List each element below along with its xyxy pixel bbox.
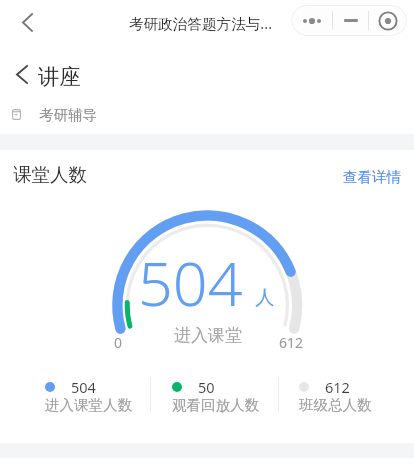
staticText: 观看回放人数 <box>172 396 259 414</box>
button[interactable]: More options <box>291 5 332 36</box>
button[interactable]: Back <box>10 5 44 39</box>
staticText: 查看详情 <box>343 168 401 186</box>
staticText: 0 <box>114 333 123 352</box>
staticText: 612 <box>279 333 304 352</box>
staticText: 504 <box>71 377 96 397</box>
button[interactable]: 查看详情 <box>335 160 409 194</box>
staticText: 讲座 <box>38 63 81 90</box>
staticText: 考研政治答题方法与... <box>129 13 273 33</box>
staticText: 612 <box>325 377 350 397</box>
staticText: 人 <box>255 285 275 310</box>
staticText: 进入课堂 <box>174 325 242 346</box>
staticText: 考研辅导 <box>39 106 97 124</box>
staticText: 课堂人数 <box>13 163 87 186</box>
button[interactable]: Minimize <box>333 5 368 36</box>
button[interactable]: 504 <box>23 374 150 416</box>
staticText: 进入课堂人数 <box>45 396 132 414</box>
button[interactable]: 50 <box>150 374 277 416</box>
button[interactable]: Back <box>6 58 38 90</box>
staticText: 504 <box>138 241 243 324</box>
staticText: 50 <box>198 377 215 397</box>
staticText: 班级总人数 <box>299 396 372 414</box>
button[interactable]: 612 <box>277 374 404 416</box>
button[interactable]: Close <box>369 5 407 36</box>
